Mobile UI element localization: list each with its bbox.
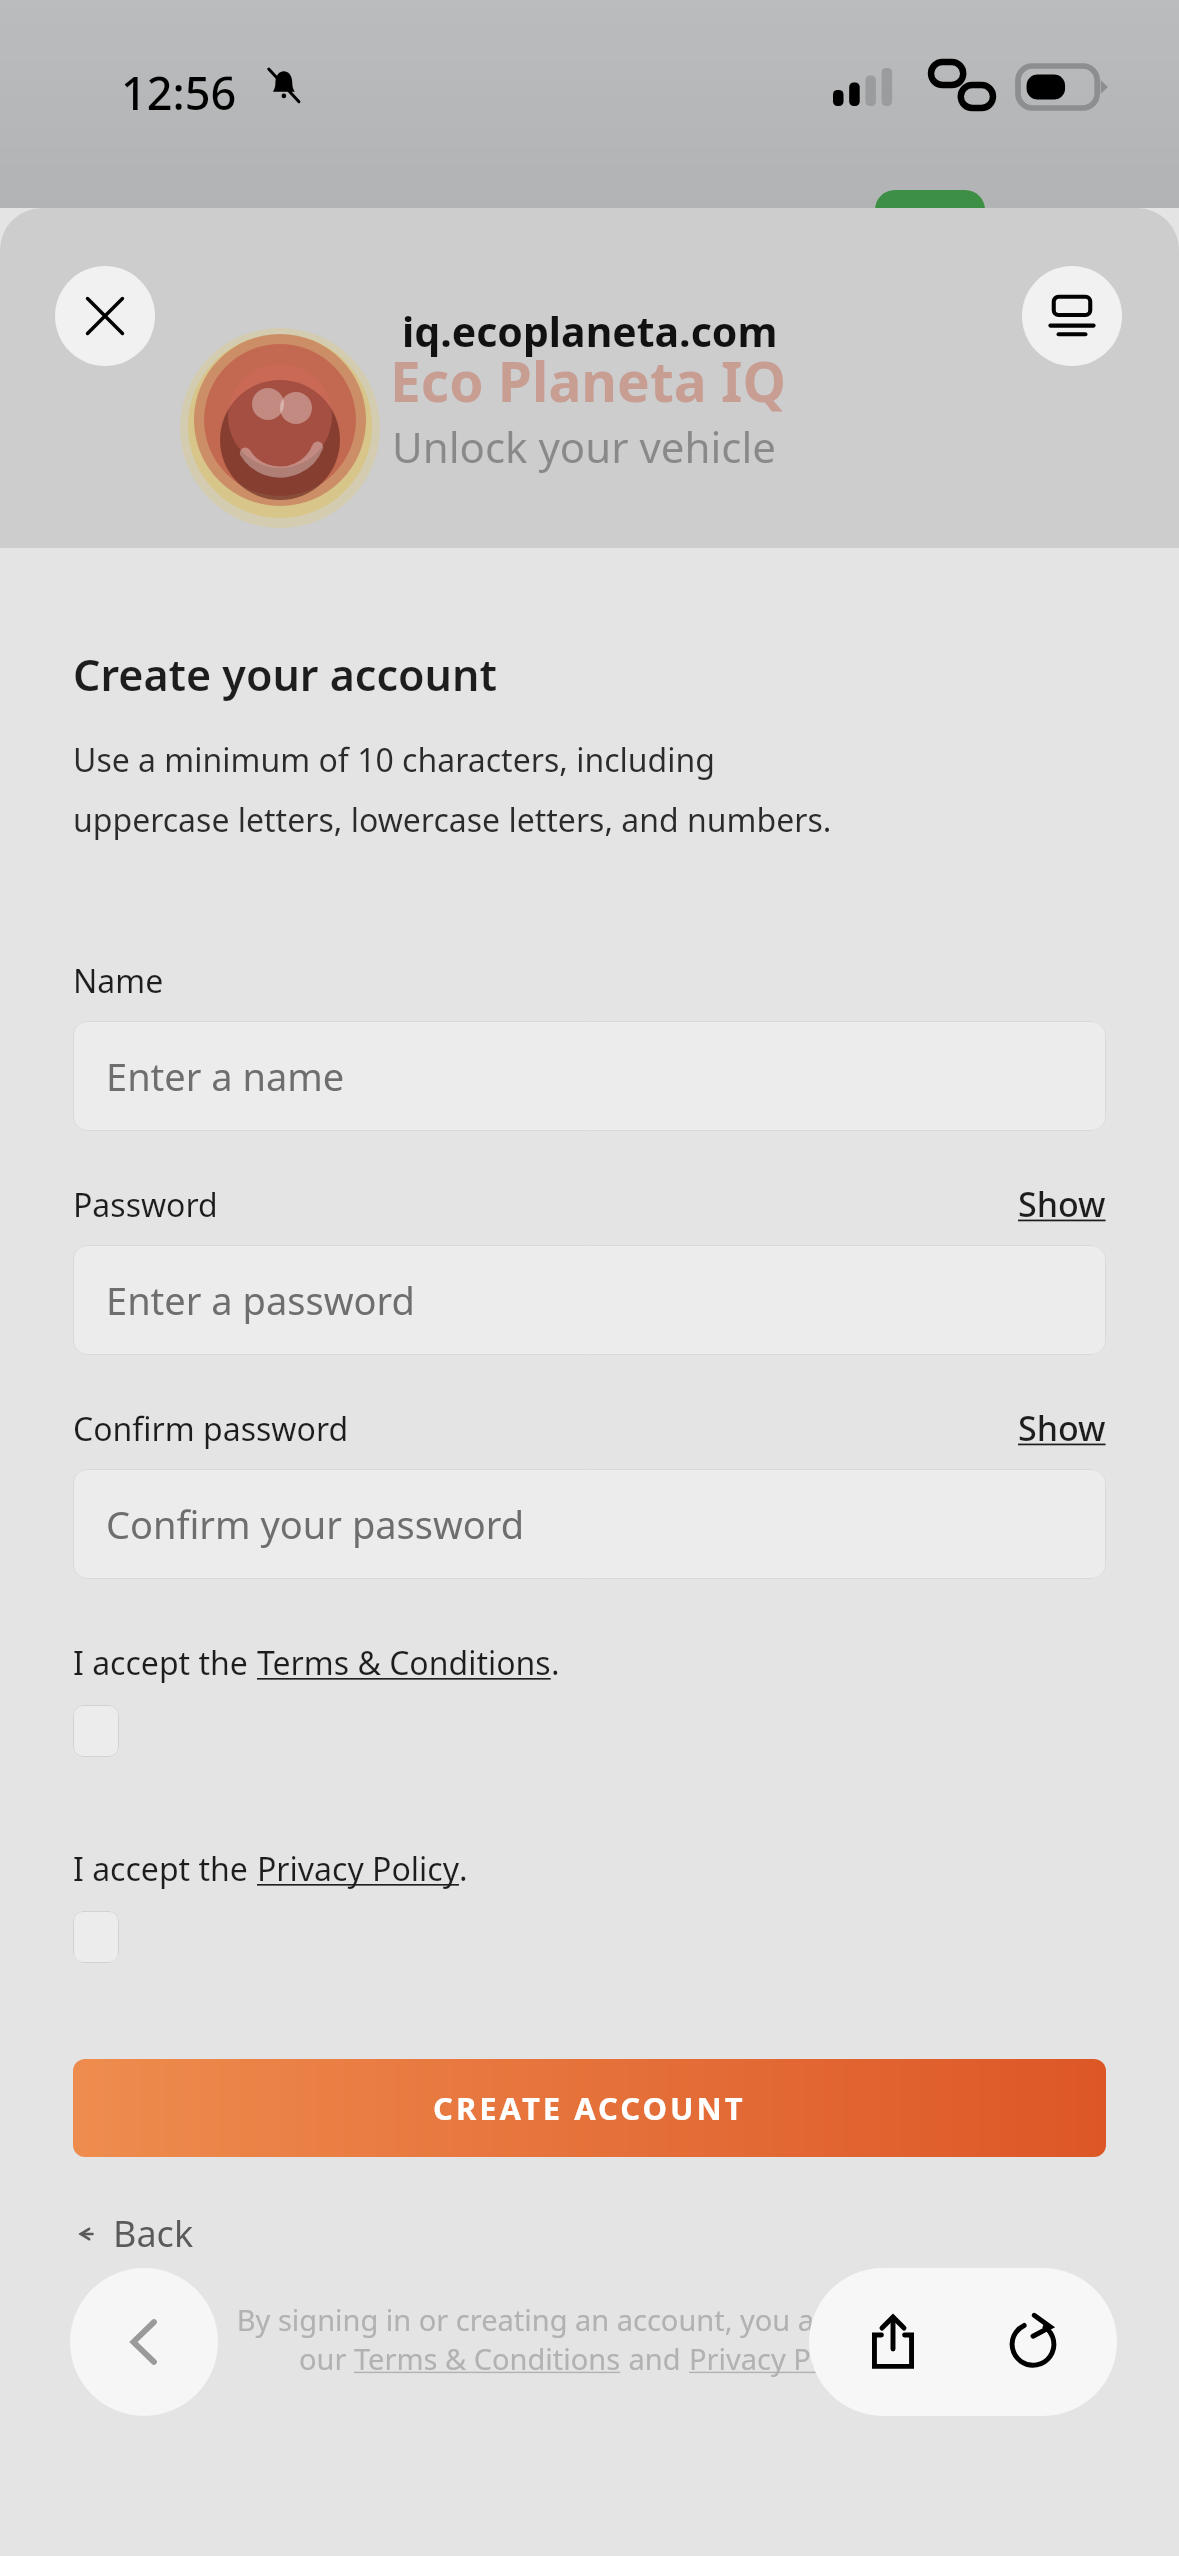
button[interactable]: Show [1018,1405,1106,1451]
button[interactable]: Close [55,266,155,366]
button[interactable]: Back [73,2209,194,2258]
staticText: Name [73,959,164,1003]
button[interactable]: Terms & Conditions [257,1641,551,1685]
staticText: Create your account [73,645,497,704]
staticText: our [299,2339,354,2378]
staticText: I accept the [73,1847,257,1891]
staticText: Eco Planeta IQ [390,343,786,418]
staticText: . [551,1641,560,1685]
button[interactable]: Accept Privacy Policy [73,1911,119,1963]
staticText: and [621,2339,689,2378]
staticText: I accept the [73,1641,257,1685]
staticText: Confirm your password [106,1498,525,1550]
staticText: Unlock your vehicle [392,418,776,475]
staticText: . [873,2339,881,2378]
button[interactable]: Privacy Policy [689,2339,873,2378]
button[interactable]: Enter a password [73,1245,1106,1355]
button[interactable]: Share [838,2287,948,2397]
staticText: Confirm password [73,1407,349,1451]
button[interactable]: Page settings [1022,266,1122,366]
button[interactable]: Privacy Policy [257,1847,459,1891]
button[interactable]: Accept Terms & Conditions [73,1705,119,1757]
staticText: Password [73,1183,218,1227]
button[interactable]: Reload [978,2287,1088,2397]
staticText: Enter a password [106,1274,415,1326]
staticText: CREATE ACCOUNT [433,2087,746,2129]
button[interactable]: CREATE ACCOUNT [73,2059,1106,2157]
staticText: Enter a name [106,1050,345,1102]
staticText: Back [113,2209,194,2258]
button[interactable]: Confirm your password [73,1469,1106,1579]
staticText: . [459,1847,468,1891]
button[interactable]: Back [70,2268,218,2416]
button[interactable]: Terms & Conditions [354,2339,621,2378]
button[interactable]: Enter a name [73,1021,1106,1131]
button[interactable]: Show [1018,1181,1106,1227]
staticText: Use a minimum of 10 characters, includin… [73,738,832,841]
staticText: By signing in or creating an account, yo… [73,2300,1106,2339]
staticText: 12:56 [121,62,237,123]
staticText: iq.ecoplaneta.com [402,303,778,359]
